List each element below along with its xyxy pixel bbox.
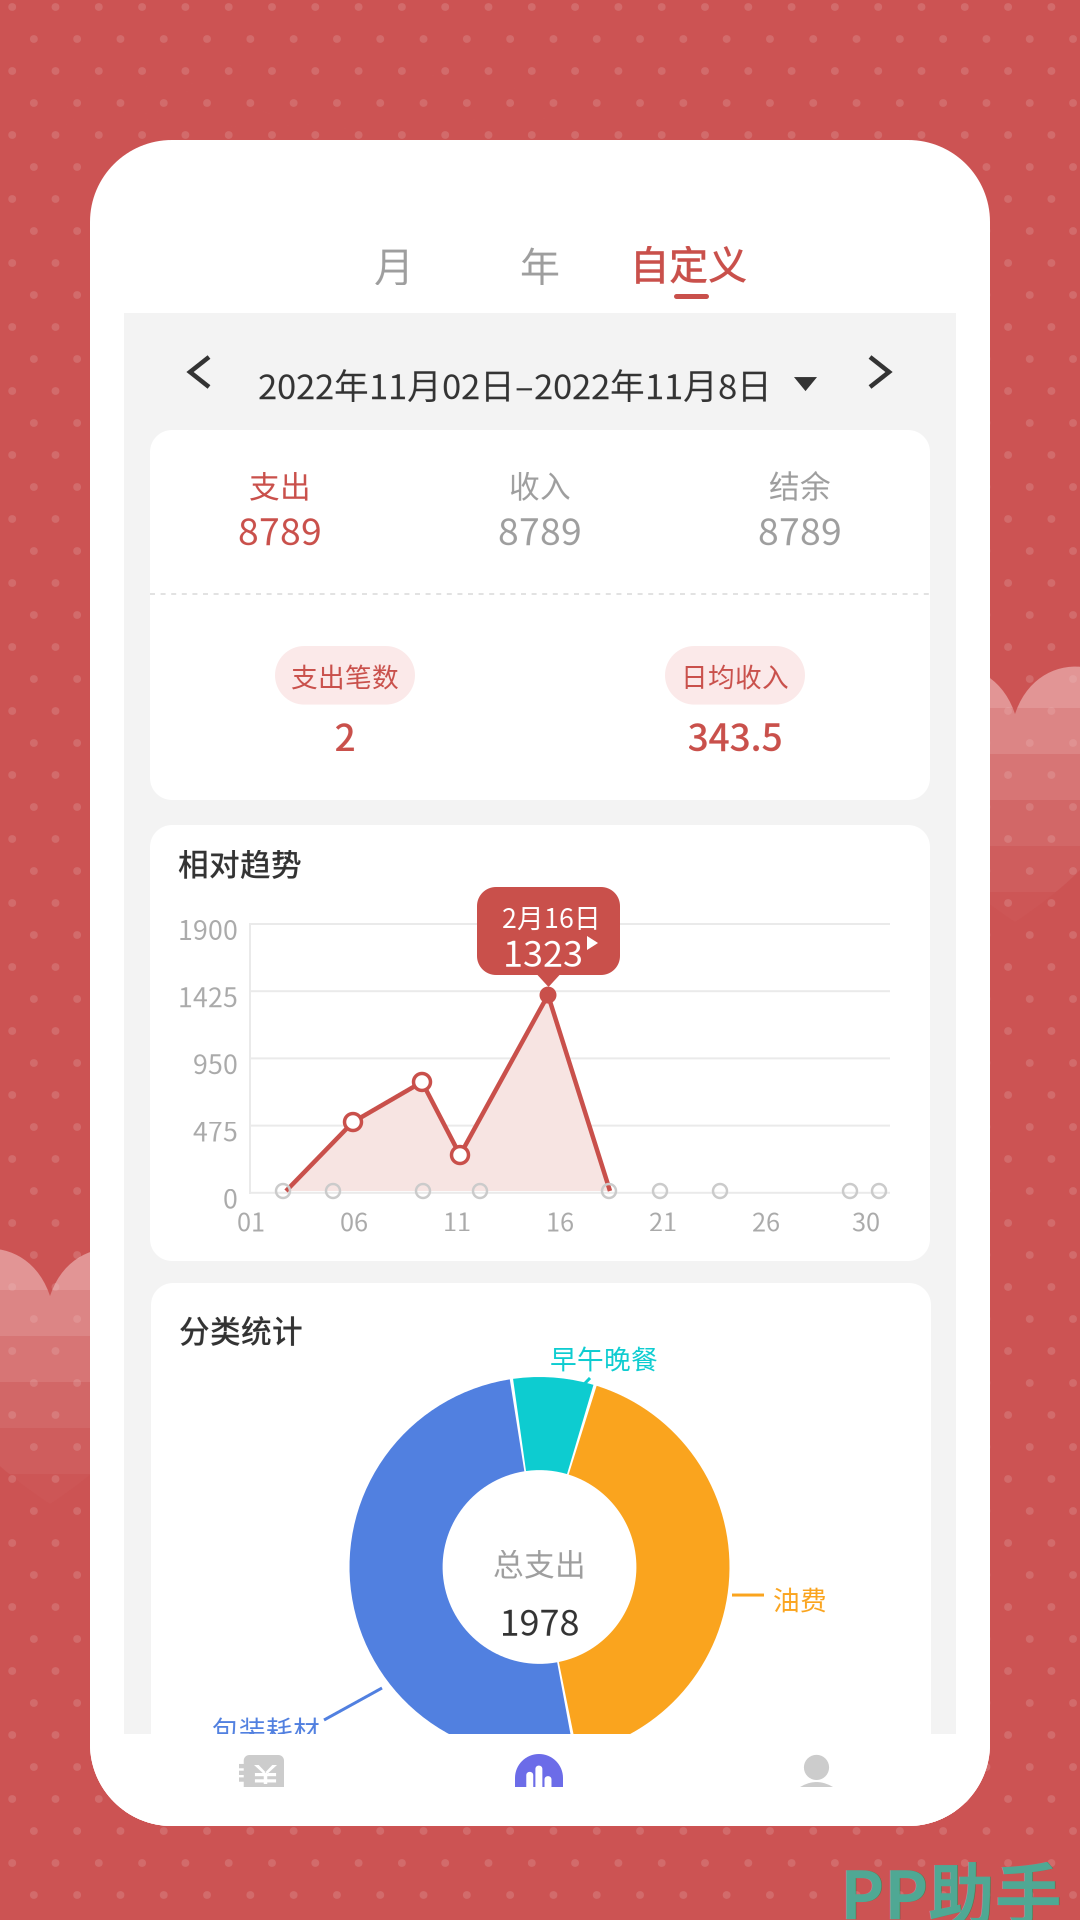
- staticText: 包装耗材: [212, 1709, 320, 1748]
- staticText: 结余: [769, 462, 831, 506]
- staticText: 日均收入: [681, 656, 789, 695]
- button[interactable]: Statistics: [489, 1728, 589, 1813]
- staticText: 1323: [503, 925, 583, 977]
- staticText: 1900: [178, 909, 238, 948]
- staticText: 2022年11月02日–2022年11月8日: [258, 359, 772, 409]
- staticText: 26: [752, 1202, 780, 1239]
- button[interactable]: Ledger: [213, 1729, 310, 1813]
- staticText: 21: [649, 1202, 677, 1239]
- staticText: PP助手: [840, 1842, 1062, 1920]
- staticText: 早午晚餐: [550, 1338, 658, 1377]
- staticText: 月: [374, 235, 414, 293]
- staticText: 30: [852, 1202, 880, 1239]
- staticText: 01: [237, 1202, 265, 1239]
- staticText: 支出笔数: [291, 656, 399, 695]
- staticText: 油费: [773, 1579, 827, 1618]
- staticText: 收入: [509, 462, 571, 506]
- button[interactable]: 月: [334, 203, 454, 325]
- staticText: 8789: [498, 502, 582, 556]
- staticText: 11: [443, 1202, 471, 1239]
- staticText: 相对趋势: [178, 840, 302, 884]
- button[interactable]: 自定义: [612, 202, 758, 312]
- staticText: 16: [546, 1202, 574, 1239]
- button[interactable]: Profile: [774, 1728, 859, 1813]
- staticText: 支出: [249, 462, 311, 506]
- staticText: 2: [334, 708, 355, 762]
- staticText: 0: [223, 1178, 238, 1216]
- staticText: 8789: [758, 502, 842, 556]
- staticText: 343.5: [687, 708, 782, 762]
- staticText: 年: [520, 235, 560, 293]
- staticText: 950: [193, 1043, 238, 1082]
- staticText: 1425: [178, 976, 238, 1015]
- staticText: 自定义: [630, 234, 747, 291]
- staticText: 2月16日: [502, 897, 601, 936]
- staticText: 475: [193, 1111, 238, 1149]
- staticText: 8789: [238, 502, 322, 556]
- staticText: 06: [340, 1202, 368, 1239]
- staticText: 1978: [499, 1594, 579, 1646]
- staticText: 总支出: [493, 1540, 586, 1584]
- button[interactable]: Next period: [840, 327, 919, 417]
- button[interactable]: 2022年11月02日–2022年11月8日: [258, 337, 817, 431]
- staticText: 分类统计: [179, 1307, 303, 1351]
- button[interactable]: Previous period: [160, 327, 239, 417]
- button[interactable]: 年: [480, 203, 600, 325]
